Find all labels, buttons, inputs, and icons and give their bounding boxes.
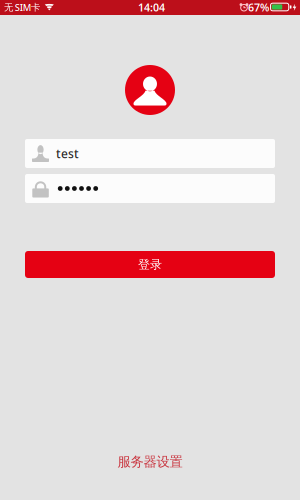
- button[interactable]: 登录: [25, 251, 275, 278]
- staticText: 服务器设置: [117, 454, 182, 470]
- staticText: test: [56, 145, 79, 161]
- staticText: 14:04: [138, 0, 165, 14]
- staticText: 无: [4, 2, 13, 13]
- staticText: 67%: [248, 0, 269, 14]
- staticText: SIM: [15, 1, 32, 14]
- staticText: 卡: [31, 2, 40, 13]
- staticText: 登录: [138, 257, 162, 272]
- button[interactable]: 服务器设置: [111, 448, 188, 476]
